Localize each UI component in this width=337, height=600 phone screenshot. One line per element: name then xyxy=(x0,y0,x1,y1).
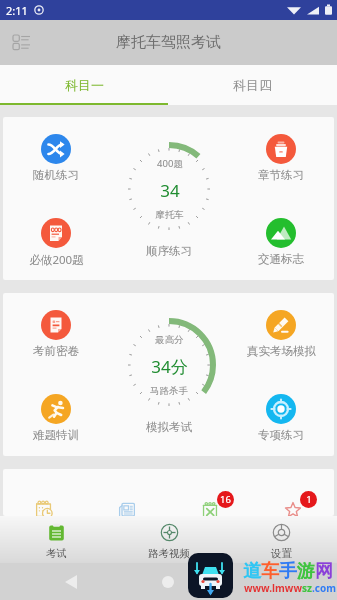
staticText: 考试 xyxy=(46,547,67,560)
staticText: 章节练习 xyxy=(258,168,304,182)
staticText: 考前密卷 xyxy=(33,344,79,358)
button[interactable]: 400题 xyxy=(121,141,217,258)
staticText: 游 xyxy=(297,560,315,583)
button[interactable]: 考试 xyxy=(0,516,113,563)
staticText: 400题 xyxy=(157,157,183,170)
button[interactable]: 交通标志 xyxy=(242,218,320,266)
other: Back xyxy=(65,575,77,589)
button[interactable]: Exam schedule xyxy=(3,497,85,516)
button[interactable]: 随机练习 xyxy=(17,134,95,182)
staticText: 手 xyxy=(279,560,297,583)
other: Home xyxy=(162,576,174,588)
staticText: 交通标志 xyxy=(258,252,304,266)
staticText: 路考视频 xyxy=(148,547,190,560)
staticText: 科目一 xyxy=(65,77,104,93)
button[interactable]: 难题特训 xyxy=(17,394,95,442)
button[interactable]: 专项练习 xyxy=(242,394,320,442)
staticText: 马路杀手 xyxy=(150,385,188,397)
button[interactable]: 最高分 xyxy=(121,317,217,434)
staticText: 难题特训 xyxy=(33,428,79,442)
button[interactable]: 设置 xyxy=(225,516,337,563)
staticText: 随机练习 xyxy=(33,168,79,182)
button[interactable]: Favourites xyxy=(251,497,334,516)
staticText: www.lmww xyxy=(244,581,302,595)
staticText: 摩托车驾照考试 xyxy=(116,33,221,52)
staticText: 1 xyxy=(306,493,312,506)
staticText: 2:11 xyxy=(6,3,28,18)
button[interactable]: 科目一 xyxy=(0,65,168,105)
button[interactable]: 真实考场模拟 xyxy=(242,310,320,358)
button[interactable]: Menu xyxy=(8,29,35,56)
staticText: 道 xyxy=(243,560,261,583)
staticText: 设置 xyxy=(271,547,292,560)
staticText: 34 xyxy=(160,179,180,202)
staticText: 网 xyxy=(315,560,333,583)
staticText: 16 xyxy=(220,493,231,506)
staticText: 摩托车 xyxy=(155,209,184,221)
staticText: 科目四 xyxy=(233,77,272,93)
staticText: 最高分 xyxy=(155,334,184,346)
staticText: 34分 xyxy=(151,355,188,378)
staticText: .com xyxy=(312,581,336,595)
staticText: 必做200题 xyxy=(29,252,84,268)
button[interactable]: 考前密卷 xyxy=(17,310,95,358)
button[interactable]: 章节练习 xyxy=(242,134,320,182)
staticText: 车 xyxy=(261,560,279,583)
staticText: 顺序练习 xyxy=(146,244,192,258)
staticText: 模拟考试 xyxy=(146,420,192,434)
staticText: sz xyxy=(302,581,312,595)
staticText: 专项练习 xyxy=(258,428,304,442)
button[interactable]: Wrong questions xyxy=(168,497,251,516)
button[interactable]: 路考视频 xyxy=(113,516,225,563)
staticText: 真实考场模拟 xyxy=(247,344,316,358)
button[interactable]: 科目四 xyxy=(168,65,337,105)
button[interactable]: 必做200题 xyxy=(17,218,95,268)
button[interactable]: News xyxy=(85,497,168,516)
